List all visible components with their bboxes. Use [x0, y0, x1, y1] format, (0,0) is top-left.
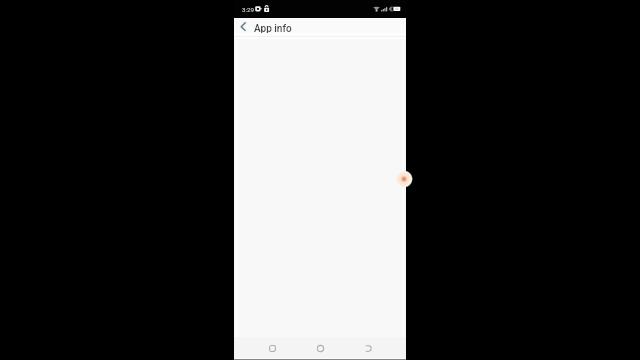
- button[interactable]: Home: [311, 339, 329, 357]
- staticText: App info: [254, 23, 292, 35]
- button[interactable]: Back: [359, 339, 377, 357]
- staticText: 3:29: [242, 6, 254, 13]
- button[interactable]: Navigate up: [236, 18, 250, 37]
- button[interactable]: Recents: [263, 339, 281, 357]
